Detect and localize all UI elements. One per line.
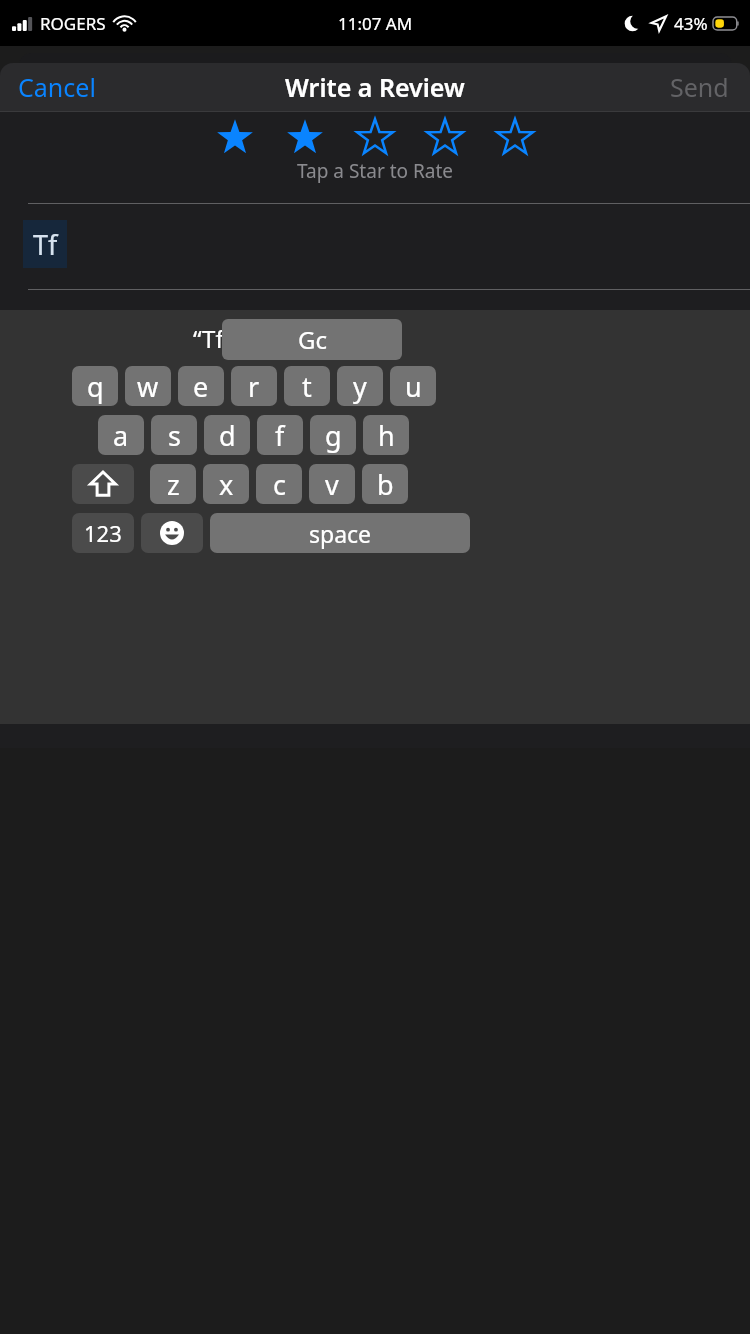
staticText: ROGERS [40, 12, 106, 35]
staticText: h [378, 417, 395, 454]
staticText: q [87, 368, 104, 405]
button[interactable]: d [204, 415, 250, 455]
staticText: c [273, 466, 286, 503]
button[interactable]: r [231, 366, 277, 406]
staticText: v [325, 466, 339, 503]
staticText: u [405, 368, 422, 405]
button[interactable]: w [125, 366, 171, 406]
staticText: s [168, 417, 181, 454]
staticText: w [137, 368, 159, 405]
button[interactable]: s [151, 415, 197, 455]
button[interactable]: Rate 2 stars [270, 118, 340, 158]
button[interactable]: space [210, 513, 470, 553]
button[interactable]: a [98, 415, 144, 455]
button[interactable]: Tf [23, 220, 67, 268]
button[interactable]: Shift [72, 464, 134, 504]
staticText: a [113, 417, 129, 454]
staticText: z [167, 466, 180, 503]
button[interactable]: Emoji [141, 513, 203, 553]
button[interactable]: z [150, 464, 196, 504]
staticText: f [275, 417, 285, 454]
button[interactable]: y [337, 366, 383, 406]
staticText: Tap a Star to Rate [297, 158, 454, 184]
button[interactable]: e [178, 366, 224, 406]
button[interactable]: c [256, 464, 302, 504]
button[interactable]: Rate 1 stars [200, 118, 270, 158]
button[interactable]: v [309, 464, 355, 504]
staticText: Write a Review [285, 70, 465, 104]
button[interactable]: h [363, 415, 409, 455]
button[interactable]: q [72, 366, 118, 406]
button[interactable]: Gc [222, 319, 402, 360]
staticText: y [353, 368, 367, 405]
staticText: r [248, 368, 260, 405]
staticText: 11:07 AM [338, 12, 413, 35]
staticText: space [309, 518, 372, 549]
button[interactable]: Rate 4 stars [410, 118, 480, 158]
button[interactable]: x [203, 464, 249, 504]
button[interactable]: Cancel [14, 66, 100, 108]
button[interactable]: g [310, 415, 356, 455]
staticText: Tf [33, 226, 58, 263]
button[interactable]: b [362, 464, 408, 504]
staticText: Gc [298, 323, 327, 356]
staticText: e [193, 368, 209, 405]
button[interactable]: Send [666, 66, 733, 108]
button[interactable]: 123 [72, 513, 134, 553]
staticText: t [302, 368, 312, 405]
button[interactable]: Rate 5 stars [480, 118, 550, 158]
staticText: Send [670, 70, 729, 104]
button[interactable]: Rate 3 stars [340, 118, 410, 158]
staticText: 43% [674, 12, 708, 35]
staticText: 123 [84, 518, 122, 548]
button[interactable]: “Tf” [185, 314, 242, 363]
staticText: x [219, 466, 234, 503]
staticText: “Tf” [193, 322, 234, 355]
button[interactable]: t [284, 366, 330, 406]
staticText: b [377, 466, 394, 503]
staticText: d [219, 417, 236, 454]
staticText: g [325, 417, 342, 454]
staticText: Cancel [18, 70, 96, 104]
button[interactable]: u [390, 366, 436, 406]
button[interactable]: f [257, 415, 303, 455]
